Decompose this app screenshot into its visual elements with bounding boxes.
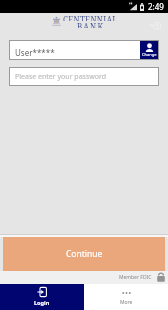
button[interactable]: More — [84, 284, 168, 310]
button[interactable]: Change — [140, 41, 158, 59]
button[interactable]: Login — [0, 284, 84, 310]
staticText: Continue — [66, 248, 103, 260]
button[interactable]: Continue — [3, 237, 165, 271]
staticText: Please enter your password — [15, 72, 107, 82]
button[interactable]: User***** — [9, 40, 159, 60]
button[interactable]: Please enter your password — [9, 67, 159, 86]
staticText: Change — [142, 52, 157, 57]
staticText: BANK — [77, 21, 105, 28]
staticText: More — [120, 299, 133, 306]
staticText: CENTENNIAL — [63, 14, 118, 21]
staticText: Login — [34, 299, 50, 306]
staticText: User***** — [15, 47, 55, 58]
staticText: 2:49 — [148, 1, 164, 12]
staticText: Member FDIC — [119, 274, 152, 281]
